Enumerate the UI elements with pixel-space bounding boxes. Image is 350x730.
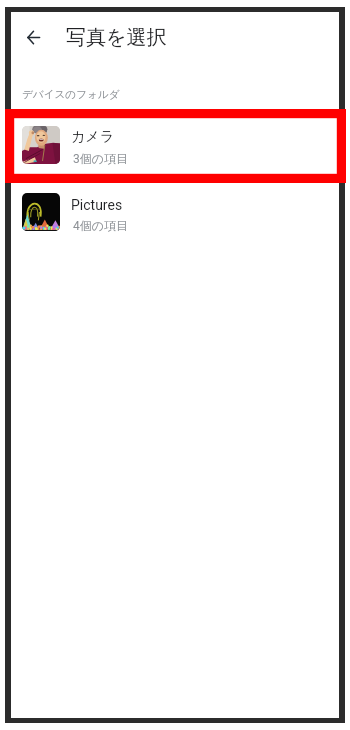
staticText: 写真を選択 bbox=[66, 25, 167, 50]
staticText: 4個の項目 bbox=[73, 218, 129, 233]
staticText: カメラ bbox=[71, 128, 114, 146]
staticText: 3個の項目 bbox=[73, 151, 129, 166]
button[interactable]: カメラ bbox=[11, 115, 339, 175]
button[interactable]: Pictures bbox=[11, 182, 339, 242]
button[interactable]: Back bbox=[19, 23, 47, 51]
staticText: Pictures bbox=[71, 197, 123, 213]
staticText: デバイスのフォルダ bbox=[22, 88, 120, 101]
